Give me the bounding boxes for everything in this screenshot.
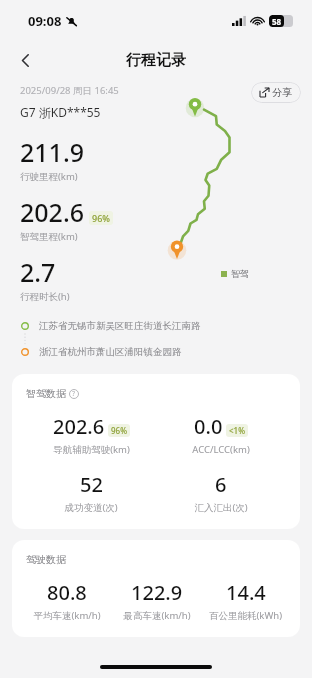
staticText: 浙江省杭州市萧山区浦阳镇金园路 (39, 346, 182, 358)
staticText: 52 (80, 471, 103, 498)
staticText: 行驶里程(km) (20, 170, 78, 183)
staticText: 智驾里程(km) (20, 230, 78, 243)
staticText: 平均车速(km/h) (33, 609, 101, 622)
staticText: 江苏省无锡市新吴区旺庄街道长江南路 (39, 320, 201, 332)
staticText: 2025/09/28 周日 16:45 (20, 84, 119, 97)
staticText: ? (72, 389, 76, 399)
staticText: 汇入汇出(次) (194, 501, 248, 514)
staticText: 成功变道(次) (64, 501, 118, 514)
staticText: 导航辅助驾驶(km) (53, 443, 130, 456)
staticText: 202.6 (53, 413, 105, 440)
staticText: G7 浙KD***55 (20, 104, 101, 120)
staticText: 14.4 (226, 579, 266, 606)
staticText: 百公里能耗(kWh) (209, 609, 282, 622)
staticText: 驾驶数据 (26, 553, 66, 566)
staticText: 96% (92, 212, 110, 224)
staticText: 2.7 (20, 255, 56, 289)
staticText: 行程时长(h) (20, 290, 70, 303)
staticText: 智驾数据 (26, 387, 66, 400)
staticText: 09:08 (28, 12, 62, 30)
staticText: 80.8 (47, 579, 87, 606)
staticText: 行程记录 (126, 51, 186, 70)
staticText: 122.9 (131, 579, 183, 606)
staticText: 6 (215, 471, 227, 498)
staticText: 58 (272, 16, 282, 27)
staticText: 智驾 (231, 268, 249, 279)
button[interactable]: 分享 (251, 82, 301, 103)
staticText: 211.9 (20, 135, 85, 169)
staticText: 0.0 (194, 413, 223, 440)
button[interactable]: 说明 (69, 389, 79, 399)
staticText: 96% (111, 425, 127, 436)
staticText: 202.6 (20, 195, 85, 229)
staticText: 分享 (272, 86, 292, 99)
staticText: <1% (229, 425, 245, 436)
staticText: 最高车速(km/h) (123, 609, 191, 622)
staticText: ACC/LCC(km) (192, 443, 250, 456)
button[interactable]: Back (8, 43, 42, 77)
